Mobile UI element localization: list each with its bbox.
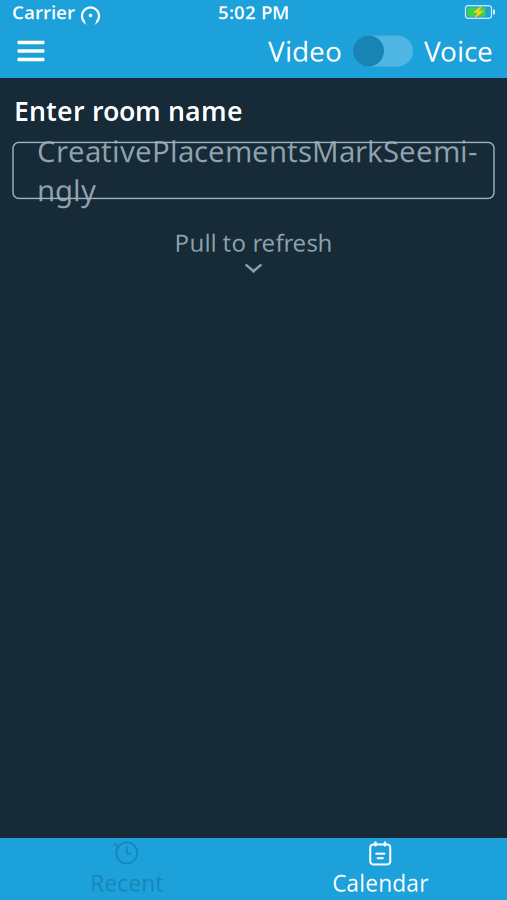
staticText: 5:02 PM (218, 0, 289, 24)
staticText: Video (268, 32, 342, 70)
staticText: ⚡ (471, 5, 486, 19)
staticText: Pull to refresh (174, 226, 332, 258)
staticText: Voice (424, 32, 493, 70)
button[interactable]: Calendar (253, 838, 507, 900)
staticText: Carrier (12, 0, 75, 24)
staticText: CreativePlacementsMarkSeemingly (37, 131, 477, 209)
button[interactable]: CreativePlacementsMarkSeemingly (13, 142, 494, 198)
button[interactable]: Menu (4, 27, 58, 75)
button[interactable]: Recent (0, 838, 253, 900)
staticText: Recent (90, 868, 163, 898)
staticText: Calendar (332, 868, 428, 898)
staticText: Enter room name (14, 93, 243, 128)
button[interactable]: Video (268, 32, 493, 70)
